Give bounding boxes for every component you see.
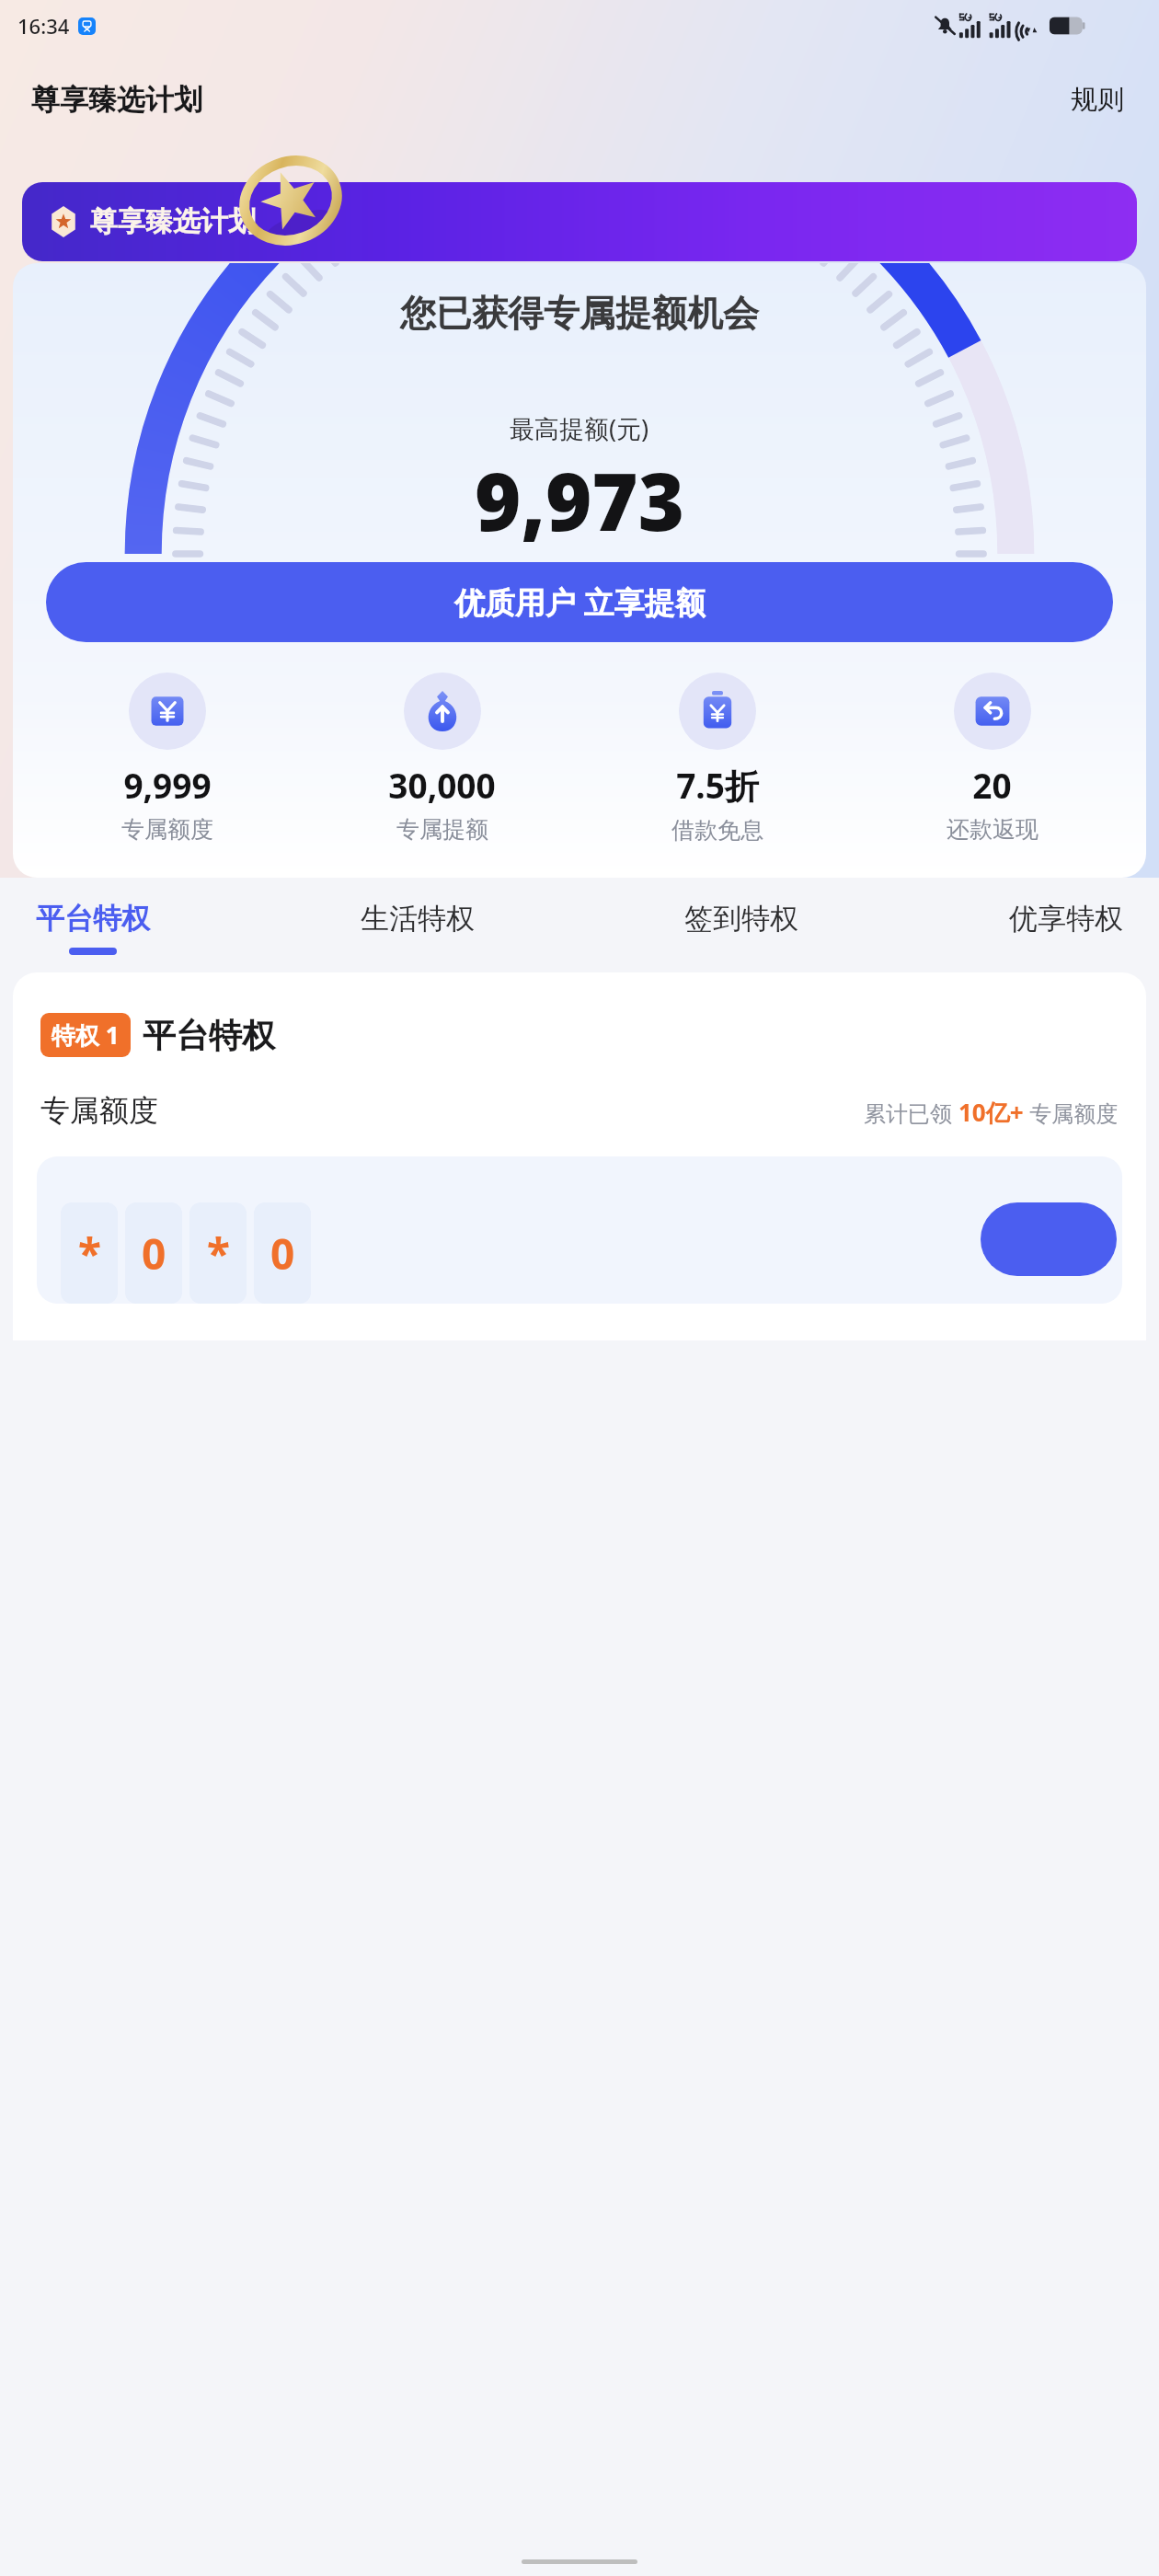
staticText: 7.5折 xyxy=(676,762,759,809)
button[interactable]: 生活特权 xyxy=(352,896,483,960)
button[interactable]: 7.5折 xyxy=(579,671,855,846)
staticText: 30,000 xyxy=(388,762,496,808)
button[interactable]: 30,000 xyxy=(304,671,579,845)
staticText: 20 xyxy=(972,762,1012,808)
staticText: 尊享臻选计划 xyxy=(90,204,256,239)
staticText: 专属额度 xyxy=(1024,1098,1119,1128)
button[interactable]: 9,999 xyxy=(29,671,304,845)
staticText: 借款免息 xyxy=(671,816,763,845)
staticText: 签到特权 xyxy=(684,901,798,937)
staticText: 生活特权 xyxy=(361,901,475,937)
button[interactable]: 签到特权 xyxy=(676,896,807,960)
staticText: 特权 1 xyxy=(52,1018,120,1052)
staticText: 0 xyxy=(142,1225,166,1282)
staticText: * xyxy=(207,1225,230,1282)
staticText: 16:34 xyxy=(17,12,70,40)
button[interactable]: 优质用户 立享提额 xyxy=(46,562,1113,642)
staticText: 专属额度 xyxy=(40,1092,158,1129)
staticText: 优质用户 立享提额 xyxy=(454,581,706,623)
staticText: 平台特权 xyxy=(143,1015,275,1056)
staticText: 尊享臻选计划 xyxy=(31,82,202,118)
staticText: 平台特权 xyxy=(36,901,150,937)
button[interactable] xyxy=(981,1202,1117,1276)
staticText: 最高提额(元) xyxy=(510,411,649,445)
staticText: 9,973 xyxy=(475,446,685,554)
staticText: 还款返现 xyxy=(947,815,1039,844)
other: Gold medal xyxy=(232,142,350,259)
staticText: 专属额度 xyxy=(121,815,213,844)
staticText: 您已获得专属提额机会 xyxy=(400,291,759,336)
staticText: 优享特权 xyxy=(1009,901,1123,937)
staticText: 专属提额 xyxy=(396,815,488,844)
staticText: 0 xyxy=(270,1225,295,1282)
button[interactable]: 平台特权 xyxy=(28,896,158,960)
staticText: 累计已领 xyxy=(864,1098,958,1128)
button[interactable]: 尊享臻选计划 xyxy=(22,182,1137,261)
staticText: 规则 xyxy=(1071,83,1124,117)
button[interactable]: 优享特权 xyxy=(1001,896,1131,960)
button[interactable]: * xyxy=(37,1156,1122,1304)
button[interactable]: 20 xyxy=(855,671,1130,845)
button[interactable]: 规则 xyxy=(1067,79,1128,121)
staticText: 10亿+ xyxy=(958,1096,1024,1129)
staticText: * xyxy=(78,1225,101,1282)
staticText: 9,999 xyxy=(123,762,212,808)
